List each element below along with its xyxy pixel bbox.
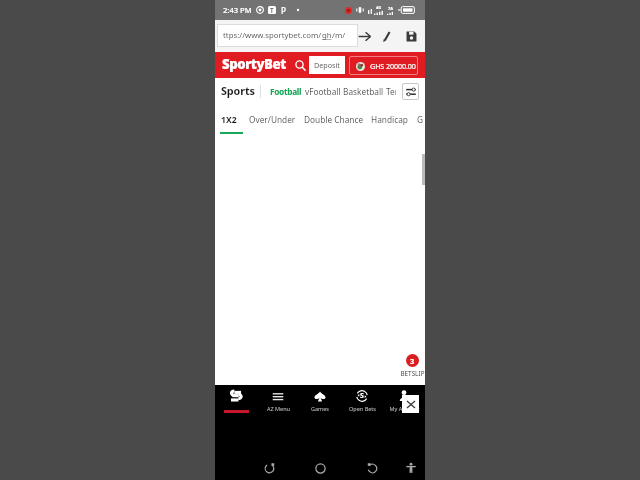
- staticText: My Account: [389, 405, 420, 412]
- button[interactable]: Ten: [386, 86, 396, 97]
- staticText: 2:43 PM: [223, 5, 252, 15]
- button[interactable]: Recents: [365, 461, 379, 475]
- staticText: Handicap: [371, 114, 408, 125]
- staticText: Open Bets: [349, 405, 376, 412]
- button[interactable]: Home: [313, 461, 327, 475]
- button[interactable]: Close ad: [402, 395, 419, 413]
- button[interactable]: Edit: [376, 25, 398, 47]
- button[interactable]: AZ Menu: [257, 385, 299, 417]
- staticText: T: [270, 6, 274, 14]
- staticText: Deposit: [314, 60, 340, 70]
- button[interactable]: 3: [398, 354, 426, 378]
- staticText: AZ Menu: [267, 405, 290, 412]
- button[interactable]: S: [341, 385, 383, 417]
- staticText: ttps://www.sportybet.com/: [223, 30, 322, 41]
- button[interactable]: My Account: [383, 385, 425, 417]
- staticText: G: [417, 114, 424, 125]
- staticText: P: [281, 5, 286, 16]
- staticText: 4G: [376, 5, 382, 10]
- staticText: 7A: [388, 6, 394, 11]
- staticText: /m/: [332, 30, 346, 41]
- button[interactable]: Go: [353, 25, 375, 47]
- staticText: GHS 20000.00: [370, 61, 416, 71]
- staticText: 1X2: [221, 114, 237, 126]
- button[interactable]: Over/Under: [249, 114, 296, 125]
- button[interactable]: Home: [215, 385, 257, 417]
- button[interactable]: Back: [262, 461, 276, 475]
- staticText: SportyBet: [222, 55, 286, 73]
- button[interactable]: 1X2: [221, 114, 237, 126]
- button[interactable]: Deposit: [309, 56, 345, 74]
- staticText: Sports: [221, 83, 255, 98]
- button[interactable]: ttps://www.sportybet.com/: [217, 24, 358, 47]
- button[interactable]: vFootball: [305, 86, 341, 97]
- button[interactable]: G: [417, 114, 424, 125]
- button[interactable]: Search: [293, 52, 307, 78]
- button[interactable]: Save: [400, 25, 422, 47]
- button[interactable]: Games: [299, 385, 341, 417]
- staticText: Over/Under: [249, 114, 296, 125]
- staticText: gh: [322, 30, 332, 41]
- button[interactable]: Football: [270, 86, 302, 97]
- button[interactable]: Accessibility: [404, 461, 418, 475]
- staticText: Double Chance: [304, 114, 364, 125]
- button[interactable]: Basketball: [343, 86, 384, 97]
- staticText: Games: [311, 405, 329, 412]
- staticText: 3: [410, 356, 415, 366]
- staticText: BETSLIP: [400, 369, 425, 378]
- button[interactable]: Filter: [402, 83, 419, 100]
- button[interactable]: GHS 20000.00: [349, 56, 418, 75]
- button[interactable]: Double Chance: [304, 114, 364, 125]
- button[interactable]: Handicap: [371, 114, 408, 125]
- staticText: S: [360, 391, 364, 401]
